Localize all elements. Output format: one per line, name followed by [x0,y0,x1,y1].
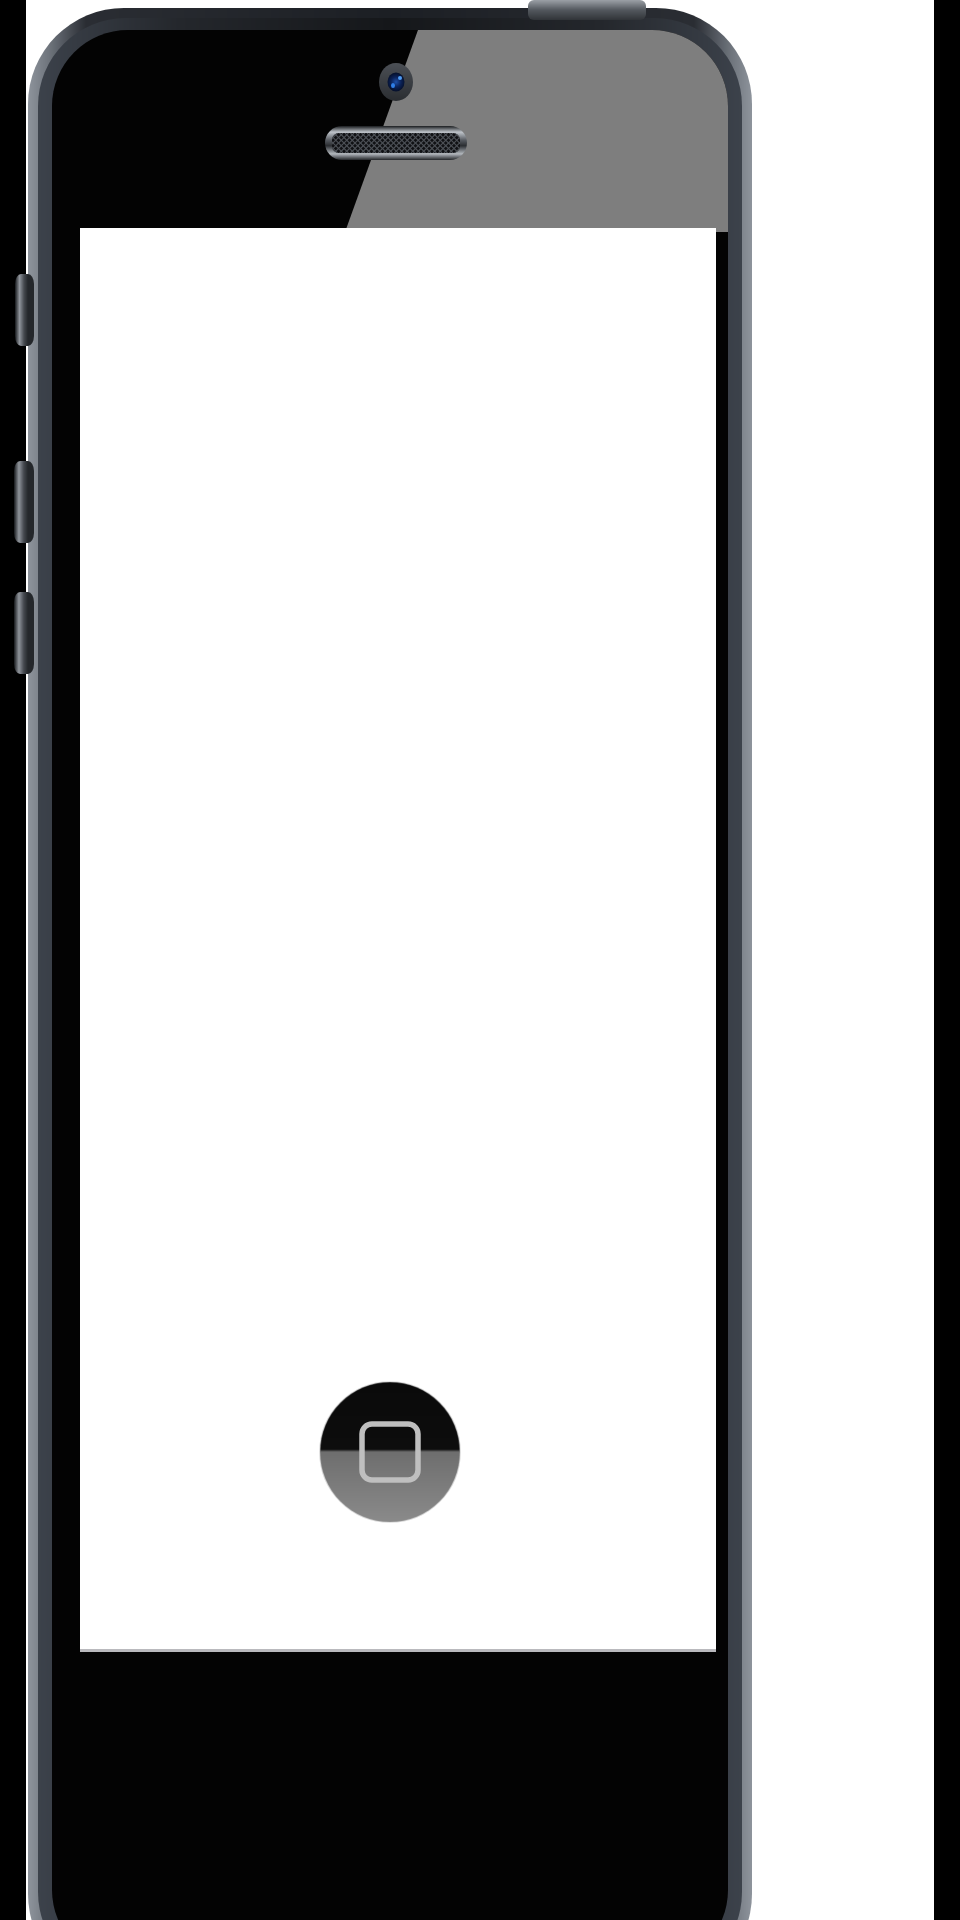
button[interactable]: iPhone device mockup with blank white sc… [0,0,960,1920]
